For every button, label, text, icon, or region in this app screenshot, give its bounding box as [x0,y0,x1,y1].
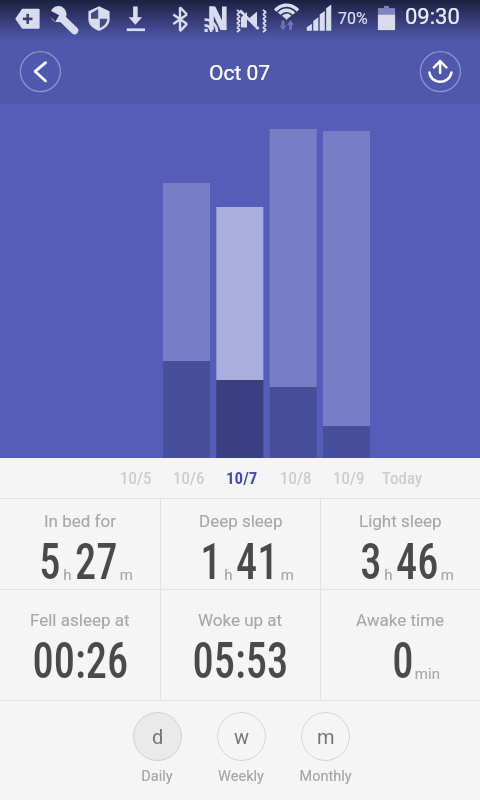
button[interactable]: 10/9 [321,463,377,493]
staticText: 3 [360,533,382,592]
staticText: Light sleep [359,511,442,531]
staticText: w [234,725,250,748]
button[interactable]: Today [374,463,430,493]
staticText: 10/5 [120,468,152,488]
button[interactable]: Light sleep [321,499,480,589]
staticText: 00:26 [32,632,128,691]
staticText: Fell asleep at [30,610,130,630]
staticText: Today [382,468,423,488]
staticText: Monthly [299,768,352,785]
staticText: Deep sleep [199,511,283,531]
staticText: 10/9 [333,468,365,488]
button[interactable]: d [117,712,197,785]
button[interactable]: 10/5 [108,463,164,493]
button[interactable]: Fell asleep at [0,590,160,700]
staticText: 10/8 [280,468,312,488]
staticText: 41 [236,533,278,592]
staticText: m [281,566,295,584]
staticText: d [152,725,164,748]
button[interactable]: Back [18,49,63,94]
staticText: 10/7 [226,468,258,488]
button[interactable]: Deep sleep [161,499,320,589]
button[interactable]: Woke up at [161,590,320,700]
staticText: 70% [338,9,368,28]
staticText: m [120,566,134,584]
staticText: 5 [39,533,61,592]
staticText: Woke up at [198,610,283,630]
staticText: 27 [75,533,117,592]
staticText: h [63,566,72,584]
staticText: 05:53 [192,632,288,691]
staticText: m [317,725,335,748]
staticText: h [224,566,233,584]
staticText: 0 [392,632,413,691]
staticText: h [384,566,393,584]
staticText: 46 [396,533,438,592]
staticText: 09:30 [405,4,460,30]
button[interactable]: In bed for [0,499,160,589]
staticText: m [441,566,455,584]
staticText: Daily [141,768,173,785]
button[interactable]: 10/7 [214,463,270,493]
staticText: Oct 07 [209,61,271,86]
staticText: Weekly [218,768,264,785]
button[interactable]: 10/8 [268,463,324,493]
button[interactable]: Share [418,49,463,94]
button[interactable]: m [285,712,365,785]
button[interactable]: Awake time [321,590,480,700]
staticText: In bed for [44,511,116,531]
staticText: Awake time [356,610,445,630]
staticText: 1 [200,533,222,592]
button[interactable]: w [201,712,281,785]
staticText: min [415,665,441,683]
button[interactable]: 10/6 [161,463,217,493]
staticText: 10/6 [173,468,205,488]
